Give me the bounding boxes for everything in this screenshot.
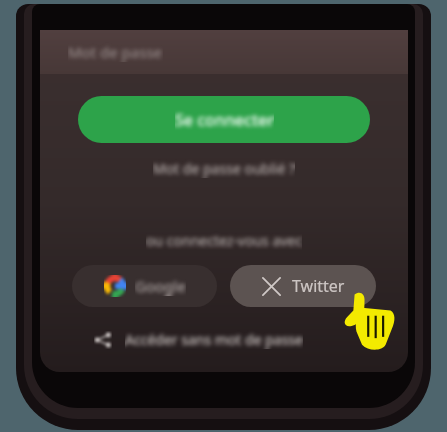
staticText: Twitter xyxy=(292,275,345,297)
button[interactable]: Mot de passe oublié ? xyxy=(153,159,295,178)
staticText: Se connecter xyxy=(175,109,274,131)
staticText: Google xyxy=(135,276,186,296)
other: Pointer xyxy=(336,288,398,354)
button[interactable]: Twitter xyxy=(230,265,376,307)
staticText: ou connectez-vous avec xyxy=(146,231,302,250)
button[interactable]: Mot de passe xyxy=(40,30,408,74)
button[interactable]: Se connecter xyxy=(78,96,370,143)
staticText: Mot de passe xyxy=(68,42,163,62)
button[interactable]: Accéder sans mot de passe xyxy=(94,330,303,349)
staticText: Accéder sans mot de passe xyxy=(125,330,303,349)
button[interactable]: Google xyxy=(72,265,217,307)
